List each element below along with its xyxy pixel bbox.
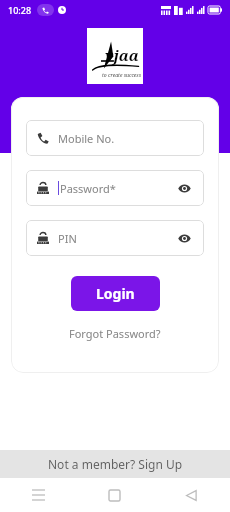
button[interactable]: Not a member? Sign Up bbox=[0, 450, 230, 478]
staticText: vjaan bbox=[105, 45, 143, 70]
staticText: Not a member? Sign Up bbox=[48, 456, 183, 472]
staticText: Password* bbox=[60, 181, 175, 196]
button[interactable]: Forgot Password? bbox=[63, 324, 167, 343]
button[interactable]: Show password bbox=[175, 179, 193, 197]
staticText: 10:28 bbox=[8, 4, 32, 16]
staticText: Mobile No. bbox=[58, 131, 193, 146]
button[interactable]: Password* bbox=[26, 170, 204, 206]
button[interactable]: Recent apps bbox=[0, 478, 76, 512]
staticText: PIN bbox=[58, 231, 175, 246]
button[interactable]: PIN bbox=[26, 220, 204, 256]
button[interactable]: Login bbox=[71, 276, 160, 311]
staticText: to create success bbox=[102, 72, 141, 79]
staticText: Login bbox=[96, 284, 135, 303]
staticText: Forgot Password? bbox=[69, 326, 161, 341]
button[interactable]: Home bbox=[76, 478, 153, 512]
button[interactable]: Show password bbox=[175, 229, 193, 247]
button[interactable]: Mobile No. bbox=[26, 120, 204, 156]
button[interactable]: Back bbox=[153, 478, 230, 512]
